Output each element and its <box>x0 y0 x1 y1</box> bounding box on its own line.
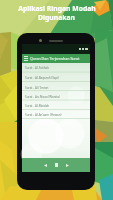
staticText: Surat - Al-Baqarah (Sapi) <box>25 76 60 80</box>
staticText: Digunakan <box>38 13 75 22</box>
button[interactable]: Surat - Al-Baqarah (Sapi) <box>22 73 90 83</box>
staticText: Quran Dan Terjemahan Surat <box>30 56 80 61</box>
staticText: Aplikasi Ringan Modah <box>18 4 96 13</box>
staticText: Surat - An-Nisaa (Wanita) <box>25 95 60 99</box>
staticText: Surat - Al-An'aam (Hewan) <box>25 113 62 117</box>
button[interactable]: Recents <box>66 164 69 167</box>
button[interactable]: Surat - Al-Fatihah <box>22 63 90 73</box>
button[interactable]: Quran Dan Terjemahan Surat <box>22 54 90 63</box>
button[interactable]: Back <box>44 164 47 167</box>
button[interactable]: Surat - Al-Maidah <box>22 101 90 110</box>
staticText: Surat - Ali 'Imran <box>25 86 49 90</box>
button[interactable]: Surat - An-Nisaa (Wanita) <box>22 92 90 101</box>
staticText: Surat - Al-Fatihah <box>25 66 50 70</box>
staticText: Surat - Al-Maidah <box>25 104 50 108</box>
button[interactable]: Surat - Ali 'Imran <box>22 83 90 92</box>
button[interactable]: Surat - Al-An'aam (Hewan) <box>22 110 90 119</box>
